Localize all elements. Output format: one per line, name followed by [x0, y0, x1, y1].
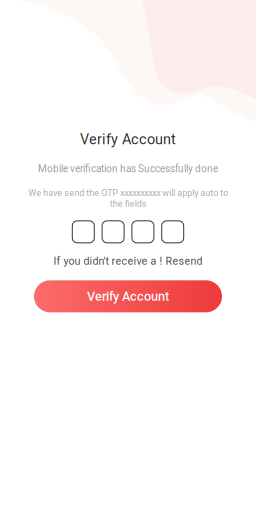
staticText: Mobile verification has Successfully don… [38, 163, 218, 175]
button[interactable]: Verify Account [34, 280, 222, 312]
staticText: If you didn't receive a ! Resend [53, 255, 202, 267]
staticText: Verify Account [80, 131, 176, 148]
staticText: We have send the OTP xxxxxxxxxx will app… [28, 188, 228, 209]
staticText: Verify Account [87, 289, 169, 304]
button[interactable]: If you didn't receive a ! Resend [53, 255, 202, 267]
